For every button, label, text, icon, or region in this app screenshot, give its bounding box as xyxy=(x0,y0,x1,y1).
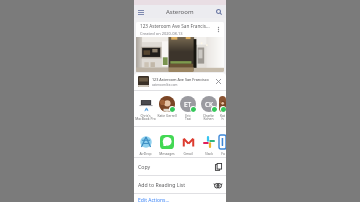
staticText: Katie Gerrell xyxy=(157,113,177,117)
staticText: asteroomlite.com xyxy=(152,83,178,87)
button[interactable]: AirDrop xyxy=(135,127,156,157)
staticText: 123 Asteroom Ave San Francisco xyxy=(152,77,209,82)
staticText: Created on 2020-08-13 xyxy=(140,31,183,36)
button[interactable]: Copy xyxy=(138,158,222,175)
button[interactable]: CK xyxy=(198,91,219,126)
staticText: Edit Actions… xyxy=(138,197,170,202)
staticText: Fa xyxy=(221,151,225,155)
button[interactable]: Edit Actions… xyxy=(138,197,226,202)
button[interactable]: Katie Gerrell xyxy=(156,91,177,126)
staticText: Kath xyxy=(219,113,226,121)
button[interactable]: Menu xyxy=(136,7,146,17)
staticText: Asteroom xyxy=(166,8,194,16)
button[interactable]: Kath xyxy=(219,91,226,126)
staticText: CK xyxy=(205,100,214,109)
staticText: Add to Reading List xyxy=(138,181,214,188)
button[interactable]: Messages xyxy=(156,127,177,157)
staticText: Messages xyxy=(159,151,175,155)
button[interactable]: Gmail xyxy=(177,127,198,157)
staticText: ET xyxy=(184,100,192,109)
staticText: Slack xyxy=(205,151,213,155)
button[interactable]: Search xyxy=(214,7,224,17)
staticText: Charlie Kohen xyxy=(203,113,214,121)
button[interactable]: Close xyxy=(214,77,223,86)
staticText: Eric Tsai xyxy=(185,113,191,121)
button[interactable]: Chris's MacBook Pro xyxy=(135,91,156,126)
staticText: 123 Asteroom Ave San Francis… xyxy=(140,23,210,29)
button[interactable]: Add to Reading List xyxy=(138,176,222,193)
button[interactable]: ET xyxy=(177,91,198,126)
button[interactable]: Slack xyxy=(198,127,219,157)
staticText: AirDrop xyxy=(139,151,152,155)
button[interactable]: Fa xyxy=(219,127,226,157)
button[interactable]: More options xyxy=(214,25,223,34)
button[interactable]: 123 Asteroom Ave San Francis… xyxy=(136,22,224,72)
staticText: Gmail xyxy=(183,151,193,155)
staticText: Copy xyxy=(138,163,214,170)
staticText: Chris's MacBook Pro xyxy=(135,113,156,121)
